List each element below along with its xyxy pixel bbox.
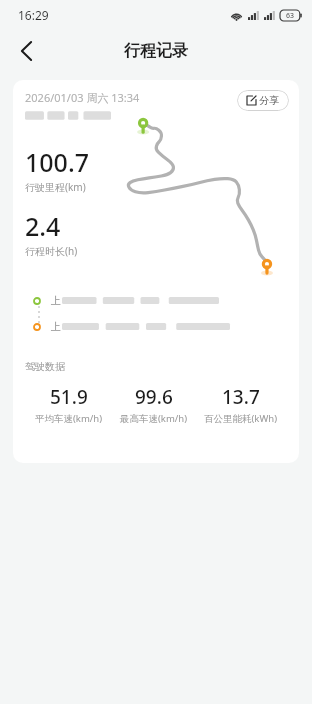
staticText: 分享 [259, 94, 279, 107]
staticText: 行程时长(h) [25, 244, 78, 258]
staticText: 13.7 [222, 384, 260, 410]
button[interactable]: 上 [13, 294, 299, 307]
staticText: 2026/01/03 周六 13:34 [25, 90, 140, 105]
staticText: 平均车速(km/h) [35, 412, 103, 425]
button[interactable]: 分享 [237, 90, 289, 111]
staticText: 行驶里程(km) [25, 180, 86, 194]
button[interactable]: Back [10, 35, 42, 67]
staticText: 100.7 [25, 145, 90, 179]
staticText: 百公里能耗(kWh) [204, 412, 277, 425]
staticText: 行程记录 [124, 41, 188, 61]
staticText: 63 [286, 11, 295, 21]
staticText: 2.4 [25, 209, 61, 243]
staticText: 上 [51, 294, 61, 307]
staticText: 16:29 [18, 7, 49, 23]
staticText: 最高车速(km/h) [120, 412, 188, 425]
staticText: 99.6 [135, 384, 173, 410]
button[interactable]: 上 [13, 320, 299, 333]
staticText: 51.9 [50, 384, 88, 410]
staticText: 驾驶数据 [25, 360, 65, 373]
staticText: 上 [51, 320, 61, 333]
